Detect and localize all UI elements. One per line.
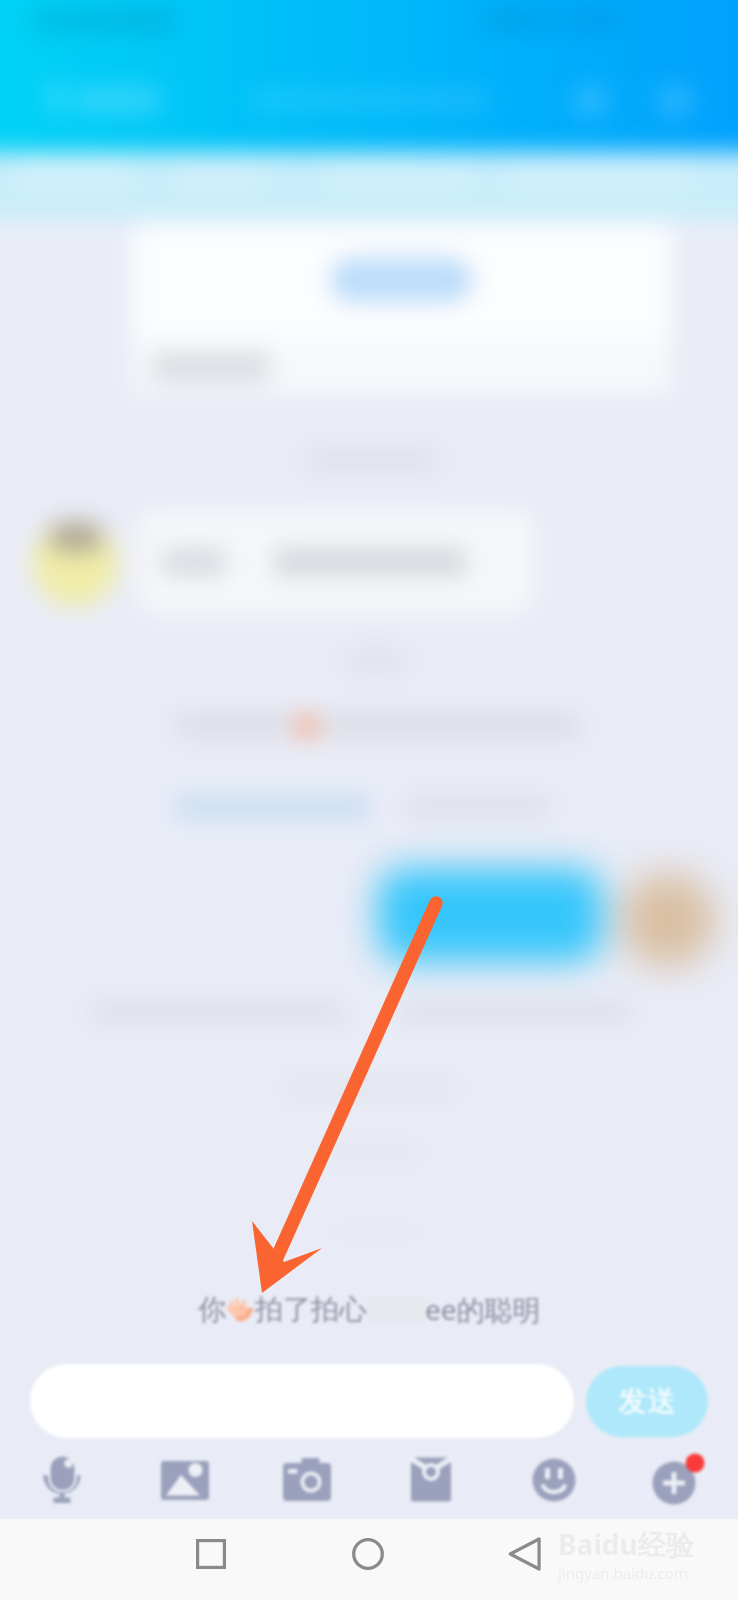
button[interactable]: Home <box>333 1519 403 1589</box>
staticText: ee的聪明 <box>425 1290 541 1328</box>
button[interactable] <box>30 1364 574 1438</box>
button[interactable]: More <box>615 1440 738 1520</box>
staticText: 拍了拍心 <box>255 1292 367 1327</box>
staticText: 发送 <box>618 1383 676 1420</box>
staticText: jingyan.baidu.com <box>558 1563 688 1583</box>
button[interactable]: Camera <box>246 1440 369 1520</box>
button[interactable]: Voice message <box>0 1440 123 1520</box>
button[interactable]: 发送 <box>586 1366 708 1437</box>
button[interactable]: Emoji <box>492 1440 615 1520</box>
button[interactable]: Photos <box>123 1440 246 1520</box>
button[interactable]: Recents <box>176 1519 246 1589</box>
staticText: 你 <box>198 1292 226 1327</box>
button[interactable]: Red packet <box>369 1440 492 1520</box>
button[interactable]: Back <box>490 1519 560 1589</box>
staticText: Baidu经验 <box>558 1525 694 1563</box>
